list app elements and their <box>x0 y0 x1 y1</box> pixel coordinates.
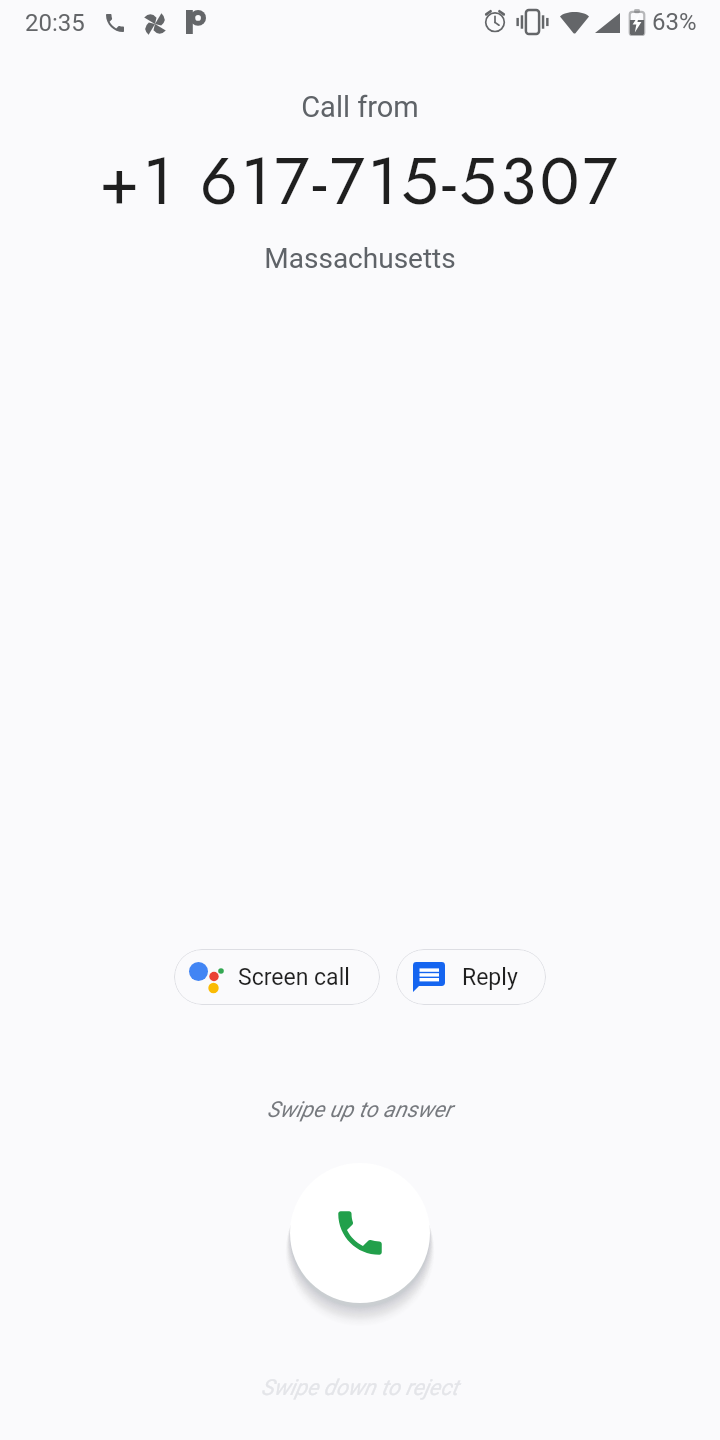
staticText: +1 617-715-5307 <box>99 133 621 228</box>
staticText: Massachusetts <box>264 242 456 275</box>
staticText: Call from <box>301 90 419 124</box>
button[interactable]: Reply <box>396 949 546 1005</box>
staticText: Swipe down to reject <box>261 1375 459 1401</box>
staticText: Reply <box>462 964 518 991</box>
staticText: Screen call <box>238 964 350 991</box>
button[interactable]: Answer call <box>290 1163 430 1303</box>
staticText: 63% <box>652 8 697 36</box>
staticText: 20:35 <box>25 9 85 37</box>
staticText: Swipe up to answer <box>267 1097 453 1123</box>
button[interactable]: Screen call <box>174 949 380 1005</box>
